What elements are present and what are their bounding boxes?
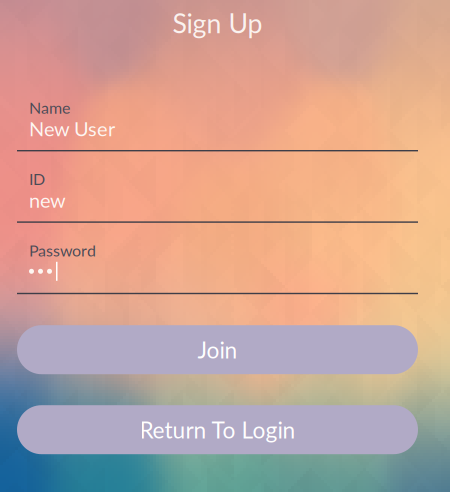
button[interactable]: Join — [17, 325, 418, 374]
staticText: new — [29, 188, 66, 212]
staticText: ID — [29, 169, 45, 188]
staticText: Join — [197, 336, 237, 363]
staticText: Sign Up — [172, 7, 262, 39]
staticText: Name — [29, 98, 70, 117]
button[interactable]: Return To Login — [17, 405, 418, 454]
staticText: Return To Login — [139, 416, 295, 443]
staticText: Password — [29, 241, 96, 260]
staticText: New User — [29, 116, 115, 140]
